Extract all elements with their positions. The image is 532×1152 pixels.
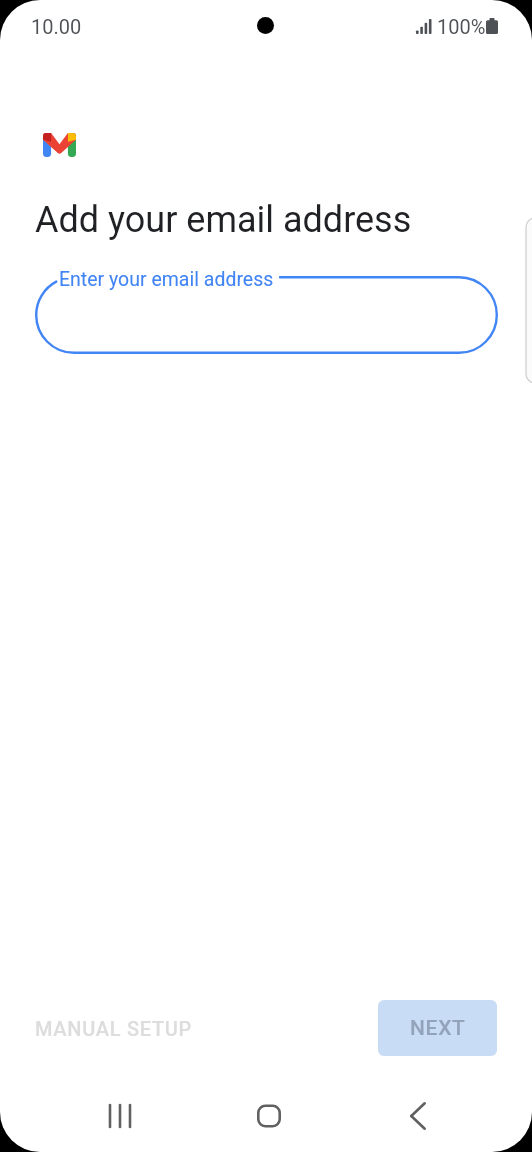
- staticText: 100%: [437, 15, 486, 38]
- staticText: NEXT: [410, 1016, 466, 1041]
- button[interactable]: NEXT: [378, 1000, 497, 1056]
- button[interactable]: Back: [343, 1080, 492, 1152]
- staticText: Add your email address: [35, 199, 412, 241]
- button[interactable]: Recent apps: [46, 1080, 194, 1152]
- staticText: Enter your email address: [59, 268, 274, 291]
- staticText: MANUAL SETUP: [35, 1017, 193, 1040]
- button[interactable]: MANUAL SETUP: [25, 1003, 203, 1054]
- button[interactable]: Home: [194, 1080, 343, 1152]
- staticText: 10.00: [31, 15, 82, 38]
- button[interactable]: Enter your email address: [35, 276, 498, 354]
